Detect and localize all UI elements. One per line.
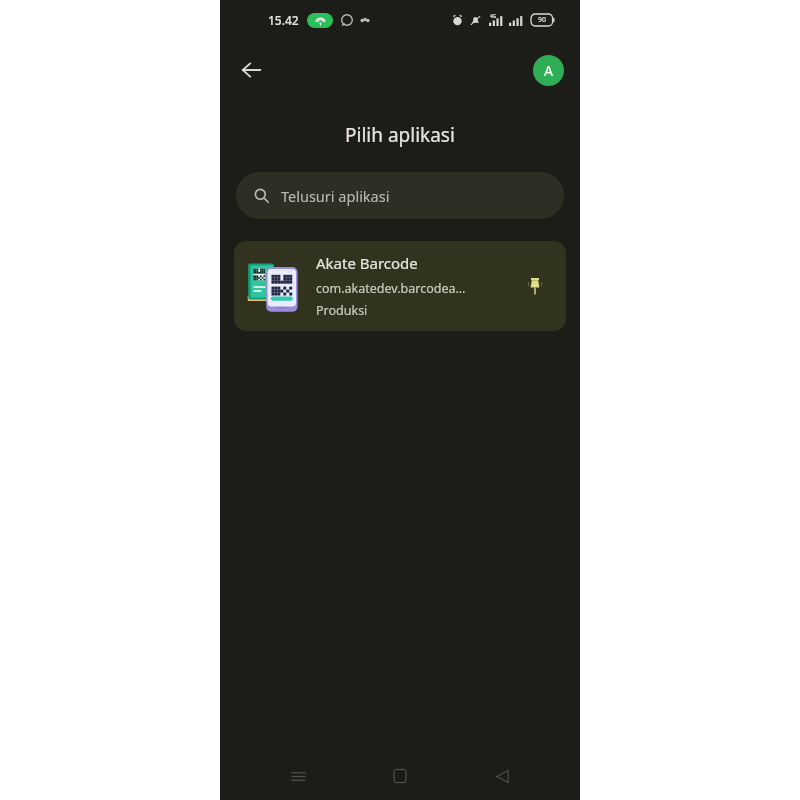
button[interactable]: Back xyxy=(230,48,274,92)
button[interactable]: Recent apps xyxy=(274,752,322,800)
staticText: 15.42 xyxy=(268,12,299,28)
staticText: Produksi xyxy=(316,302,368,319)
staticText: Akate Barcode xyxy=(316,253,418,273)
staticText: 90 xyxy=(538,15,547,25)
staticText: com.akatedev.barcodea… xyxy=(316,280,466,297)
button[interactable]: Akate Barcode xyxy=(234,241,566,331)
staticText: Pilih aplikasi xyxy=(345,122,455,148)
staticText: 4G xyxy=(490,13,497,20)
staticText: Telusuri aplikasi xyxy=(281,186,390,206)
button[interactable]: Telusuri aplikasi xyxy=(236,172,564,219)
button[interactable]: Home xyxy=(376,752,424,800)
button[interactable]: Back xyxy=(478,752,526,800)
staticText: A xyxy=(544,61,553,80)
button[interactable]: Account xyxy=(533,55,564,86)
button[interactable]: Pin xyxy=(516,267,554,305)
